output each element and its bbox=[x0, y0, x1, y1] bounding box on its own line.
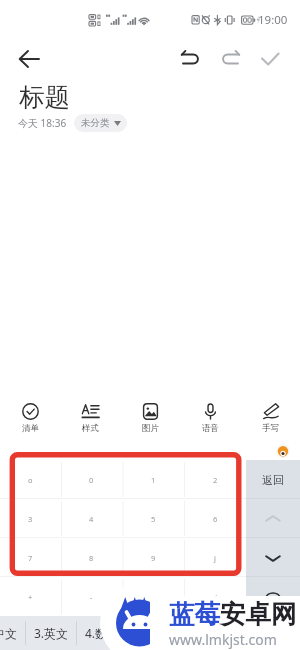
staticText: www.lmkjst.com bbox=[169, 630, 277, 649]
staticText: j bbox=[214, 553, 216, 563]
button[interactable]: * bbox=[122, 577, 184, 616]
button[interactable]: 返回 bbox=[246, 460, 300, 499]
staticText: 清单 bbox=[22, 423, 39, 434]
staticText: / bbox=[214, 592, 217, 602]
button[interactable] bbox=[246, 538, 300, 577]
button[interactable]: j bbox=[184, 538, 246, 577]
staticText: 未分类 bbox=[81, 117, 110, 129]
button[interactable]: 手写 bbox=[240, 396, 300, 434]
staticText: 19:00 bbox=[258, 12, 288, 28]
button[interactable]: 2 bbox=[184, 460, 246, 499]
staticText: 7 bbox=[28, 553, 33, 563]
staticText: 1 bbox=[151, 475, 156, 485]
button[interactable]: 4.数字 bbox=[77, 616, 128, 650]
staticText: 安卓网 bbox=[220, 598, 297, 630]
button[interactable] bbox=[246, 499, 300, 538]
button[interactable]: 3 bbox=[0, 499, 61, 538]
button[interactable]: o bbox=[0, 460, 61, 499]
button[interactable]: 语音 bbox=[180, 396, 240, 434]
staticText: 8 bbox=[89, 553, 94, 563]
button[interactable]: - bbox=[61, 577, 122, 616]
staticText: 图片 bbox=[142, 423, 159, 434]
button[interactable]: 7.手写 bbox=[230, 616, 275, 650]
button[interactable]: 1 bbox=[122, 460, 184, 499]
button[interactable]: 未分类 bbox=[74, 114, 127, 132]
button[interactable]: 清单 bbox=[0, 396, 60, 434]
button[interactable]: 4 bbox=[61, 499, 122, 538]
staticText: 4 bbox=[89, 514, 94, 524]
button[interactable]: Done bbox=[254, 43, 286, 75]
staticText: 标题 bbox=[19, 81, 70, 113]
button[interactable]: 样式 bbox=[60, 396, 120, 434]
button[interactable]: 5.符号 bbox=[128, 616, 179, 650]
button[interactable]: 9 bbox=[122, 538, 184, 577]
staticText: 6 bbox=[213, 514, 218, 524]
button[interactable]: 7 bbox=[0, 538, 61, 577]
staticText: 语音 bbox=[202, 423, 219, 434]
staticText: 今天 18:36 bbox=[18, 116, 67, 130]
button[interactable]: Back bbox=[12, 41, 47, 76]
staticText: 2.中文 bbox=[0, 625, 18, 641]
staticText: 样式 bbox=[82, 423, 99, 434]
button[interactable]: 图片 bbox=[120, 396, 180, 434]
button[interactable]: Redo bbox=[215, 43, 247, 75]
button[interactable]: 3.英文 bbox=[26, 616, 77, 650]
staticText: 3 bbox=[28, 514, 33, 524]
button[interactable]: 8 bbox=[61, 538, 122, 577]
staticText: 5.符号 bbox=[136, 625, 171, 641]
staticText: 0 bbox=[89, 475, 94, 485]
button[interactable]: / bbox=[184, 577, 246, 616]
staticText: 2 bbox=[213, 475, 218, 485]
staticText: 7.手写 bbox=[235, 625, 270, 641]
staticText: 9 bbox=[151, 553, 156, 563]
button[interactable]: 0 bbox=[61, 460, 122, 499]
staticText: 3.英文 bbox=[34, 625, 69, 641]
staticText: 6.拼音 bbox=[187, 625, 222, 641]
button[interactable]: 6 bbox=[184, 499, 246, 538]
button[interactable]: Undo bbox=[174, 43, 206, 75]
button[interactable] bbox=[246, 577, 300, 616]
staticText: + bbox=[28, 592, 33, 602]
button[interactable]: 2.中文 bbox=[0, 616, 26, 650]
staticText: 返回 bbox=[262, 473, 284, 487]
staticText: 蓝莓 bbox=[169, 598, 220, 630]
staticText: 4.数字 bbox=[85, 625, 120, 641]
staticText: o bbox=[28, 475, 33, 485]
button[interactable]: 6.拼音 bbox=[179, 616, 230, 650]
staticText: 手写 bbox=[262, 423, 279, 434]
staticText: - bbox=[90, 592, 93, 602]
button[interactable]: 5 bbox=[122, 499, 184, 538]
staticText: 5 bbox=[151, 514, 156, 524]
